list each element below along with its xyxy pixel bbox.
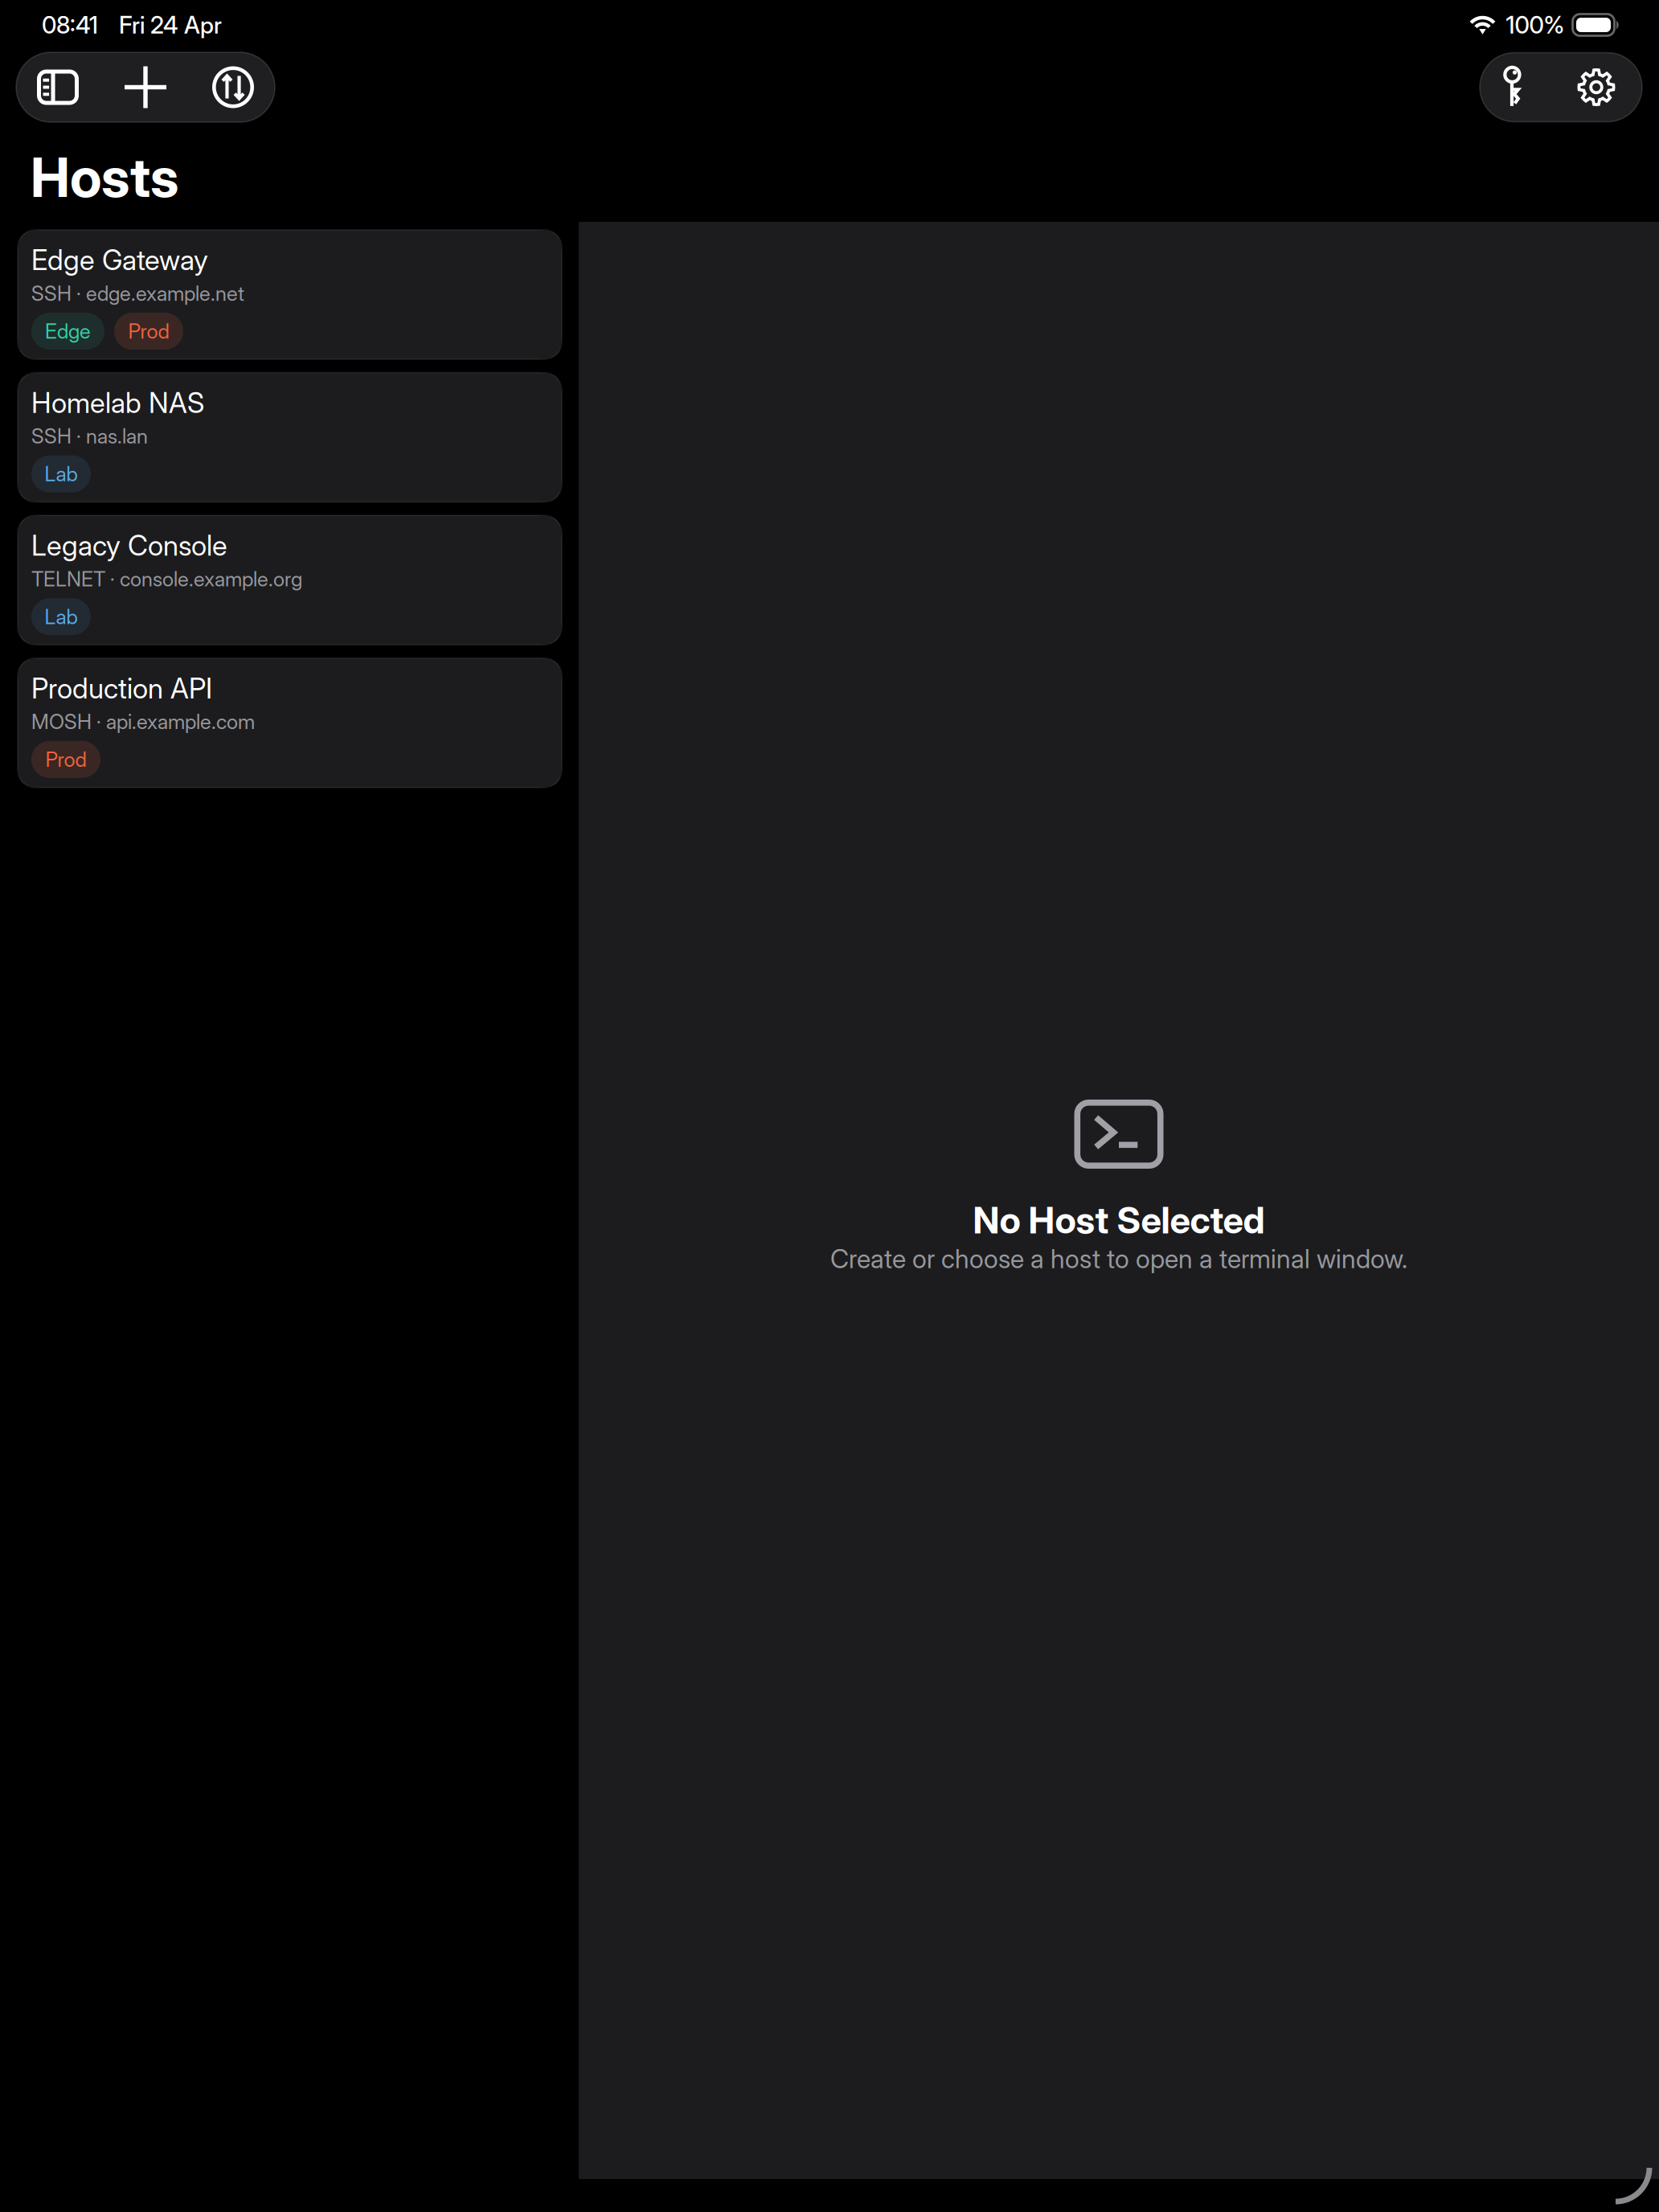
staticText: Production API	[31, 671, 212, 705]
staticText: 08:41	[42, 11, 98, 39]
button[interactable]: Production API	[18, 658, 562, 788]
staticText: Edge Gateway	[31, 243, 208, 277]
button[interactable]: Settings	[1550, 53, 1642, 122]
staticText: Fri 24 Apr	[119, 11, 222, 39]
staticText: 100%	[1506, 11, 1565, 39]
staticText: SSH · nas.lan	[31, 424, 148, 449]
staticText: MOSH · api.example.com	[31, 709, 255, 734]
staticText: Legacy Console	[31, 529, 227, 562]
staticText: Create or choose a host to open a termin…	[830, 1243, 1407, 1274]
button[interactable]: Toggle Sidebar	[16, 52, 100, 122]
button[interactable]: Legacy Console	[18, 515, 562, 645]
staticText: TELNET · console.example.org	[31, 567, 302, 591]
staticText: No Host Selected	[973, 1198, 1265, 1242]
button[interactable]: Homelab NAS	[18, 373, 562, 502]
staticText: Lab	[45, 604, 78, 629]
button[interactable]: File Transfer	[191, 52, 275, 122]
button[interactable]: New Host	[100, 52, 191, 122]
staticText: Prod	[128, 319, 169, 344]
staticText: Homelab NAS	[31, 386, 204, 420]
staticText: Edge	[45, 319, 91, 344]
button[interactable]: Keys	[1480, 53, 1550, 122]
staticText: Hosts	[31, 144, 178, 210]
button[interactable]: Edge Gateway	[18, 230, 562, 359]
staticText: Lab	[45, 462, 78, 486]
staticText: SSH · edge.example.net	[31, 281, 244, 306]
staticText: Prod	[45, 747, 86, 772]
